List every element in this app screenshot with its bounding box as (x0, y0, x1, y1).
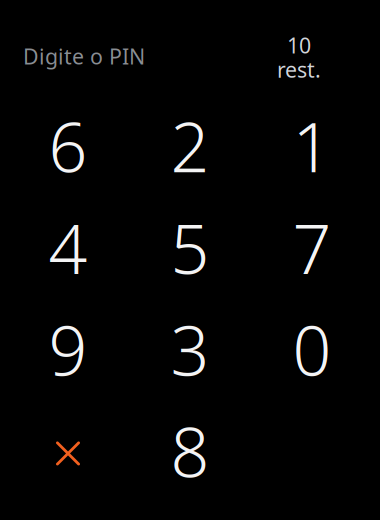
staticText: 3 (170, 304, 209, 394)
button[interactable]: 7 (251, 197, 373, 298)
staticText: 1 (292, 101, 331, 191)
staticText: 9 (48, 304, 87, 394)
staticText: 7 (292, 202, 331, 293)
button[interactable]: 9 (7, 298, 129, 400)
button[interactable]: 6 (7, 95, 129, 197)
button[interactable]: 3 (129, 298, 251, 400)
staticText: rest. (277, 55, 321, 84)
button[interactable]: 1 (251, 95, 373, 197)
staticText: 4 (48, 202, 87, 293)
staticText: Digite o PIN (23, 42, 145, 70)
button[interactable]: 4 (7, 197, 129, 298)
staticText: 2 (170, 101, 209, 191)
button[interactable]: Delete (7, 400, 129, 502)
button[interactable]: 0 (251, 298, 373, 400)
button[interactable]: 5 (129, 197, 251, 298)
staticText: 0 (292, 304, 331, 394)
staticText: 10 (287, 31, 311, 59)
button[interactable]: 8 (129, 400, 251, 502)
button[interactable]: 2 (129, 95, 251, 197)
staticText: 5 (170, 202, 209, 293)
staticText: 8 (170, 406, 209, 496)
staticText: 6 (48, 101, 87, 191)
